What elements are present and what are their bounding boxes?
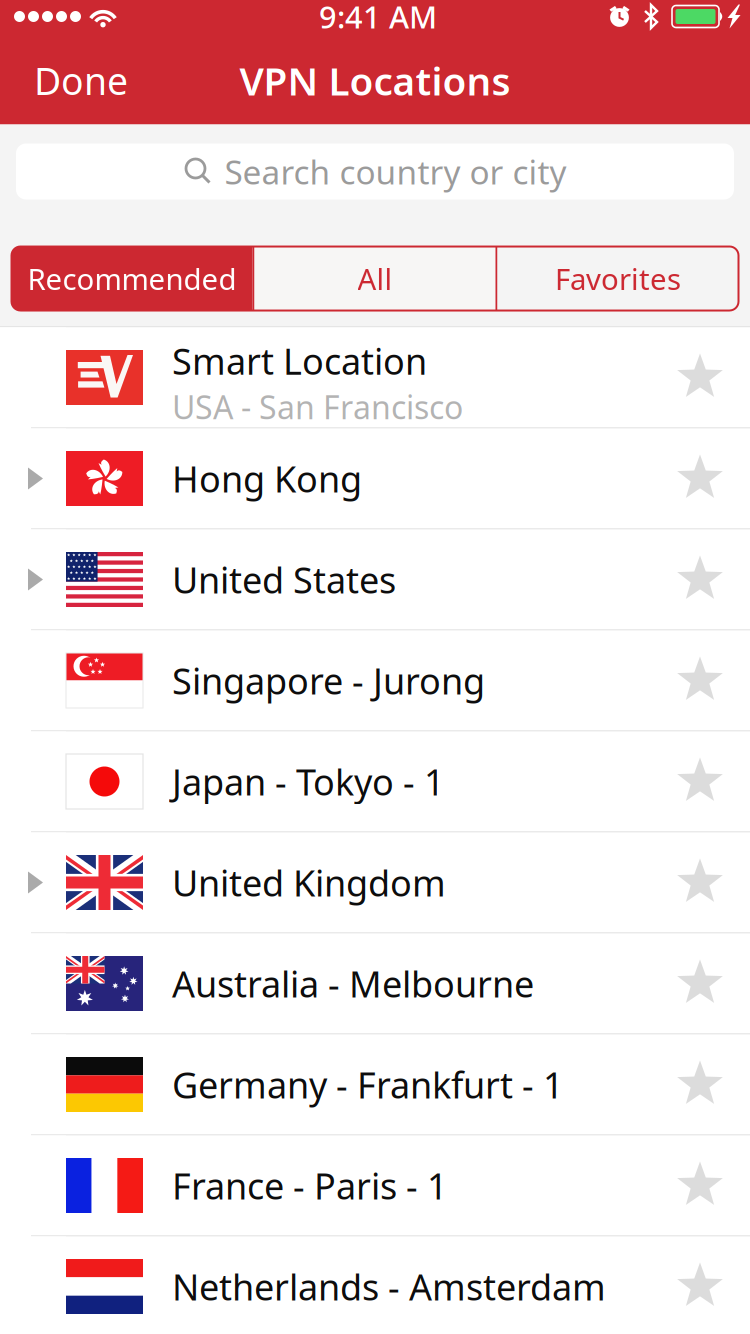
staticText: Favorites (555, 259, 681, 298)
staticText: Done (34, 56, 128, 105)
button[interactable]: France - Paris - 1 (0, 1135, 750, 1236)
staticText: Hong Kong (172, 455, 362, 502)
staticText: VPN Locations (239, 55, 510, 106)
staticText: Japan - Tokyo - 1 (172, 758, 445, 805)
staticText: All (357, 259, 392, 298)
button[interactable]: Japan - Tokyo - 1 (0, 731, 750, 832)
staticText: Singapore - Jurong (172, 657, 485, 704)
staticText: Smart Location (172, 337, 427, 385)
staticText: Recommended (27, 259, 236, 298)
button[interactable]: Smart Location (0, 327, 750, 428)
staticText: United States (172, 556, 396, 603)
staticText: Search country or city (224, 149, 566, 194)
button[interactable]: All (254, 246, 495, 310)
button[interactable]: Recommended (11, 246, 252, 310)
button[interactable]: Australia - Melbourne (0, 933, 750, 1034)
staticText: 9:41 AM (319, 0, 437, 37)
staticText: United Kingdom (172, 859, 446, 906)
staticText: Australia - Melbourne (172, 960, 534, 1007)
staticText: France - Paris - 1 (172, 1162, 448, 1209)
staticText: Germany - Frankfurt - 1 (172, 1061, 564, 1108)
staticText: USA - San Francisco (172, 386, 463, 428)
button[interactable]: Search country or city (16, 143, 734, 199)
button[interactable]: Done (0, 40, 150, 121)
staticText: Netherlands - Amsterdam (172, 1263, 606, 1310)
button[interactable]: Hong Kong (0, 428, 750, 529)
button[interactable]: Favorites (497, 246, 738, 310)
button[interactable]: Singapore - Jurong (0, 630, 750, 731)
button[interactable]: Netherlands - Amsterdam (0, 1236, 750, 1334)
button[interactable]: United States (0, 529, 750, 630)
button[interactable]: Germany - Frankfurt - 1 (0, 1034, 750, 1135)
button[interactable]: United Kingdom (0, 832, 750, 933)
